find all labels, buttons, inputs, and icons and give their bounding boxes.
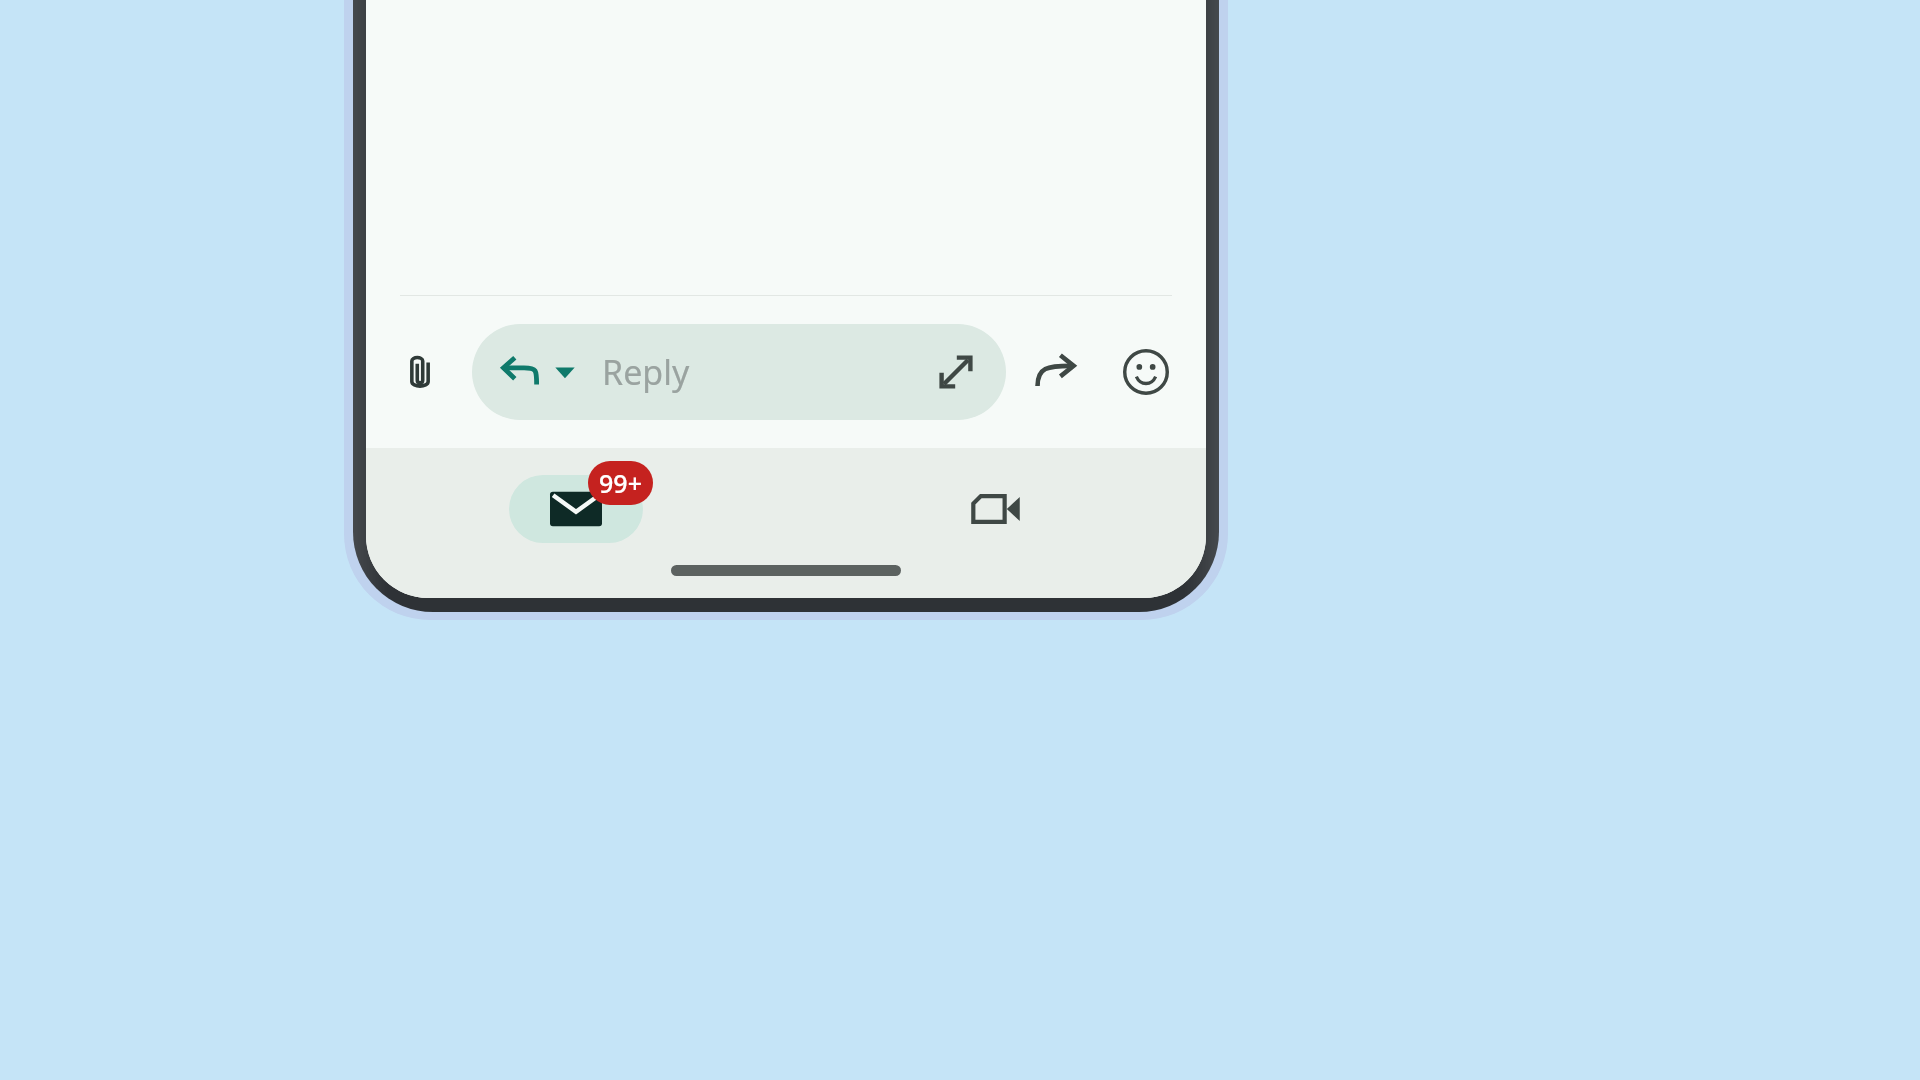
button[interactable]: Reply [472, 324, 1006, 420]
button[interactable]: Attach file [388, 340, 452, 404]
staticText: Reply [602, 349, 690, 395]
button[interactable]: Forward [1020, 336, 1092, 408]
button[interactable]: Expand compose [920, 336, 992, 408]
button[interactable]: Mail, 99+ unread [366, 448, 786, 598]
button[interactable]: Add emoji reaction [1110, 336, 1182, 408]
staticText: 99+ [599, 466, 642, 500]
button[interactable]: Meet [786, 448, 1206, 598]
